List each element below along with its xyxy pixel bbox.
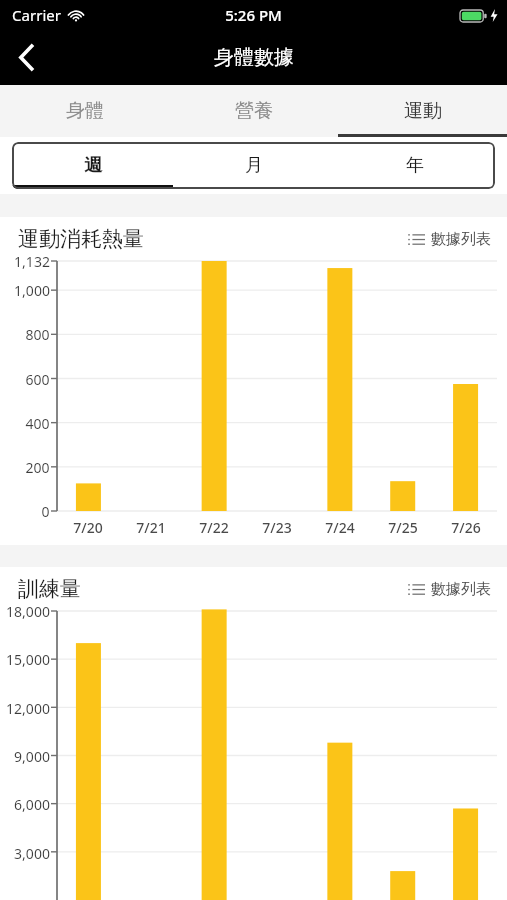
staticText: 訓練量 <box>18 576 81 602</box>
staticText: 200 <box>25 458 50 477</box>
button[interactable]: Back <box>0 30 52 85</box>
staticText: 7/26 <box>451 518 481 537</box>
button[interactable]: 月 <box>173 142 334 189</box>
staticText: Carrier <box>12 5 61 25</box>
staticText: 6,000 <box>14 795 50 814</box>
staticText: 600 <box>25 370 50 389</box>
staticText: 7/20 <box>73 518 103 537</box>
staticText: 5:26 PM <box>225 5 282 25</box>
staticText: 18,000 <box>6 602 50 621</box>
staticText: 運動消耗熱量 <box>18 226 144 252</box>
staticText: 7/25 <box>388 518 418 537</box>
staticText: 9,000 <box>14 747 50 766</box>
staticText: 身體 <box>66 99 104 123</box>
staticText: 身體數據 <box>214 45 294 70</box>
staticText: 12,000 <box>6 699 50 718</box>
button[interactable]: 運動 <box>338 85 507 137</box>
button[interactable]: 身體 <box>0 85 169 137</box>
staticText: 週 <box>84 154 102 177</box>
button[interactable]: 數據列表 <box>404 226 495 253</box>
button[interactable]: 週 <box>12 142 173 189</box>
staticText: 營養 <box>235 99 273 123</box>
button[interactable]: 年 <box>334 142 495 189</box>
staticText: 數據列表 <box>431 580 491 599</box>
staticText: 1,132 <box>14 252 50 271</box>
staticText: 0 <box>41 502 50 521</box>
button[interactable]: 數據列表 <box>404 576 495 603</box>
staticText: 運動 <box>404 99 442 123</box>
staticText: 15,000 <box>6 650 50 669</box>
staticText: 800 <box>25 325 50 344</box>
staticText: 7/22 <box>199 518 229 537</box>
staticText: 月 <box>245 154 263 177</box>
button[interactable]: 營養 <box>169 85 338 137</box>
staticText: 1,000 <box>14 281 50 300</box>
staticText: 3,000 <box>14 844 50 863</box>
staticText: 年 <box>406 154 424 177</box>
staticText: 7/21 <box>136 518 166 537</box>
staticText: 400 <box>25 414 50 433</box>
staticText: 數據列表 <box>431 230 491 249</box>
staticText: 7/24 <box>325 518 355 537</box>
staticText: 7/23 <box>262 518 292 537</box>
